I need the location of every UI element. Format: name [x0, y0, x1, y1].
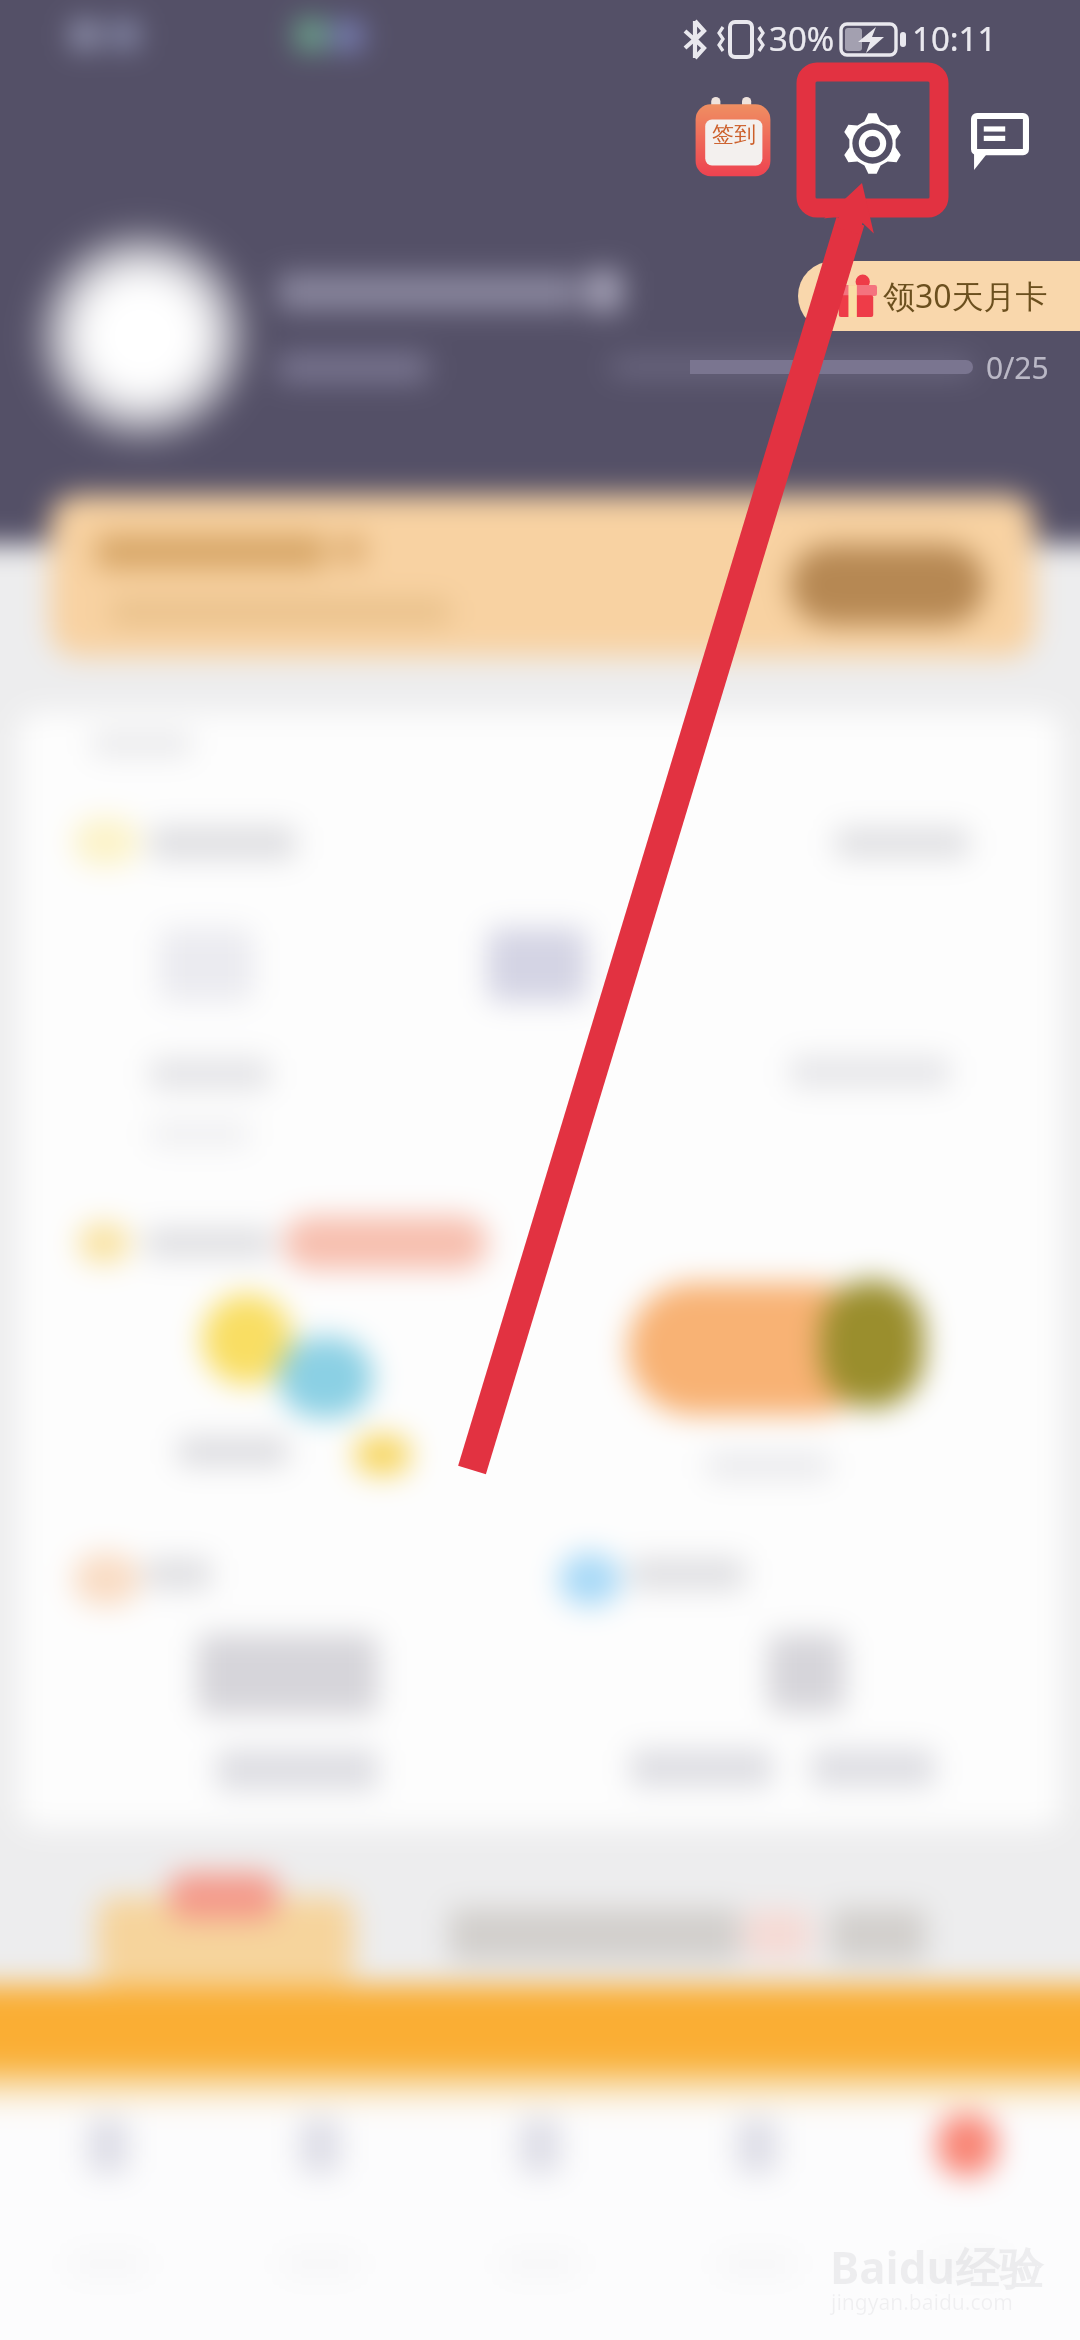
- button[interactable]: 领30天月卡: [798, 261, 1080, 331]
- staticText: Baidu经验: [830, 2237, 1044, 2297]
- button[interactable]: Messages: [971, 113, 1029, 170]
- staticText: 领30天月卡: [883, 274, 1048, 318]
- staticText: 10:11: [912, 16, 997, 61]
- button[interactable]: 签到: [694, 97, 774, 177]
- staticText: 签到: [712, 121, 756, 149]
- staticText: 30%: [769, 16, 835, 61]
- staticText: jingyan.baidu.com: [831, 2288, 1013, 2317]
- staticText: 0/25: [986, 347, 1049, 388]
- button[interactable]: Settings: [842, 113, 903, 174]
